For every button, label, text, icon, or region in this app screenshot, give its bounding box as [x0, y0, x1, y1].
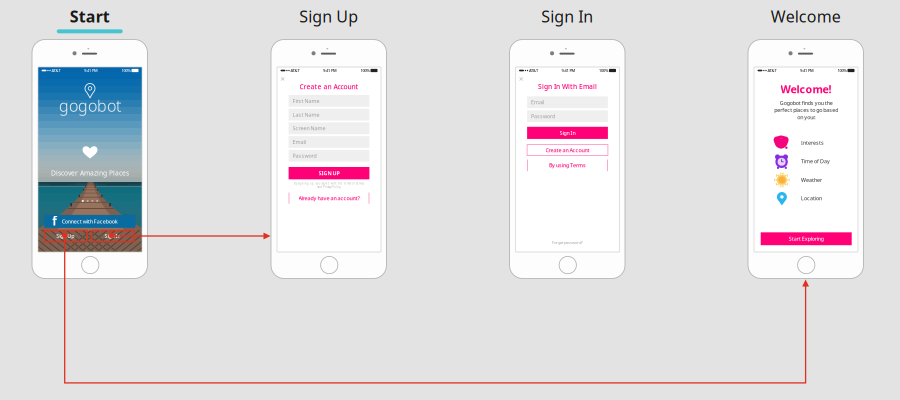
staticText: By signing up, you agree with the Terms … — [293, 182, 364, 189]
staticText: Discover Amazing Places — [51, 169, 129, 177]
staticText: AT&T — [290, 68, 299, 73]
staticText: 9:41 PM — [323, 68, 337, 73]
staticText: Last Name — [293, 111, 320, 118]
button[interactable]: SIGN UP — [289, 167, 369, 179]
staticText: 100% — [599, 68, 608, 73]
staticText: 9:41 PM — [561, 68, 575, 73]
staticText: Start — [70, 6, 110, 27]
staticText: f — [52, 213, 57, 229]
button[interactable]: Start Exploring — [761, 232, 852, 245]
staticText: Create an Account — [299, 82, 358, 91]
staticText: Location — [801, 195, 822, 202]
staticText: AT&T — [767, 68, 776, 73]
staticText: Screen Name — [293, 125, 326, 132]
staticText: AT&T — [51, 68, 60, 73]
staticText: Time of Day — [801, 158, 830, 165]
staticText: Interests — [801, 139, 824, 146]
staticText: 9:41 PM — [84, 68, 98, 73]
button[interactable]: By using Terms — [527, 159, 608, 171]
staticText: Sign In — [559, 129, 575, 136]
staticText: Welcome! — [780, 82, 831, 96]
staticText: Already have an account? — [298, 195, 359, 202]
staticText: First Name — [293, 97, 320, 104]
staticText: Password — [531, 113, 555, 120]
staticText: Sign In — [104, 232, 120, 239]
button[interactable]: Create an Account — [527, 145, 608, 156]
staticText: Gogobot finds you the perfect places to … — [774, 99, 838, 121]
button[interactable]: Already have an account? — [289, 193, 369, 204]
button[interactable]: Forgot password? — [515, 239, 619, 246]
staticText: By using Terms — [549, 162, 586, 169]
staticText: Sign Up — [299, 6, 358, 27]
staticText: 9:41 PM — [800, 68, 814, 73]
staticText: Welcome — [771, 6, 841, 27]
staticText: Connect with Facebook — [62, 218, 118, 225]
button[interactable]: Sign In — [90, 231, 135, 241]
staticText: 100% — [121, 68, 130, 73]
staticText: Weather — [801, 176, 822, 183]
button[interactable]: Connect with Facebook — [44, 215, 135, 228]
staticText: SIGN UP — [318, 170, 339, 177]
button[interactable]: Sign In — [527, 127, 608, 139]
staticText: Email — [293, 138, 306, 146]
staticText: gogobot — [59, 95, 121, 116]
button[interactable]: Close — [517, 74, 526, 83]
staticText: Forgot password? — [552, 240, 583, 245]
staticText: Start Exploring — [789, 235, 824, 242]
staticText: 100% — [837, 68, 846, 73]
staticText: Sign In With Email — [538, 82, 597, 91]
staticText: AT&T — [529, 68, 538, 73]
button[interactable]: Close — [278, 74, 287, 83]
staticText: Create an Account — [545, 147, 589, 154]
staticText: Sign In — [541, 6, 593, 27]
button[interactable]: Sign Up — [44, 231, 86, 241]
staticText: Sign Up — [56, 232, 74, 239]
staticText: Email — [531, 99, 544, 106]
staticText: 100% — [360, 68, 369, 73]
staticText: Password — [293, 152, 317, 159]
